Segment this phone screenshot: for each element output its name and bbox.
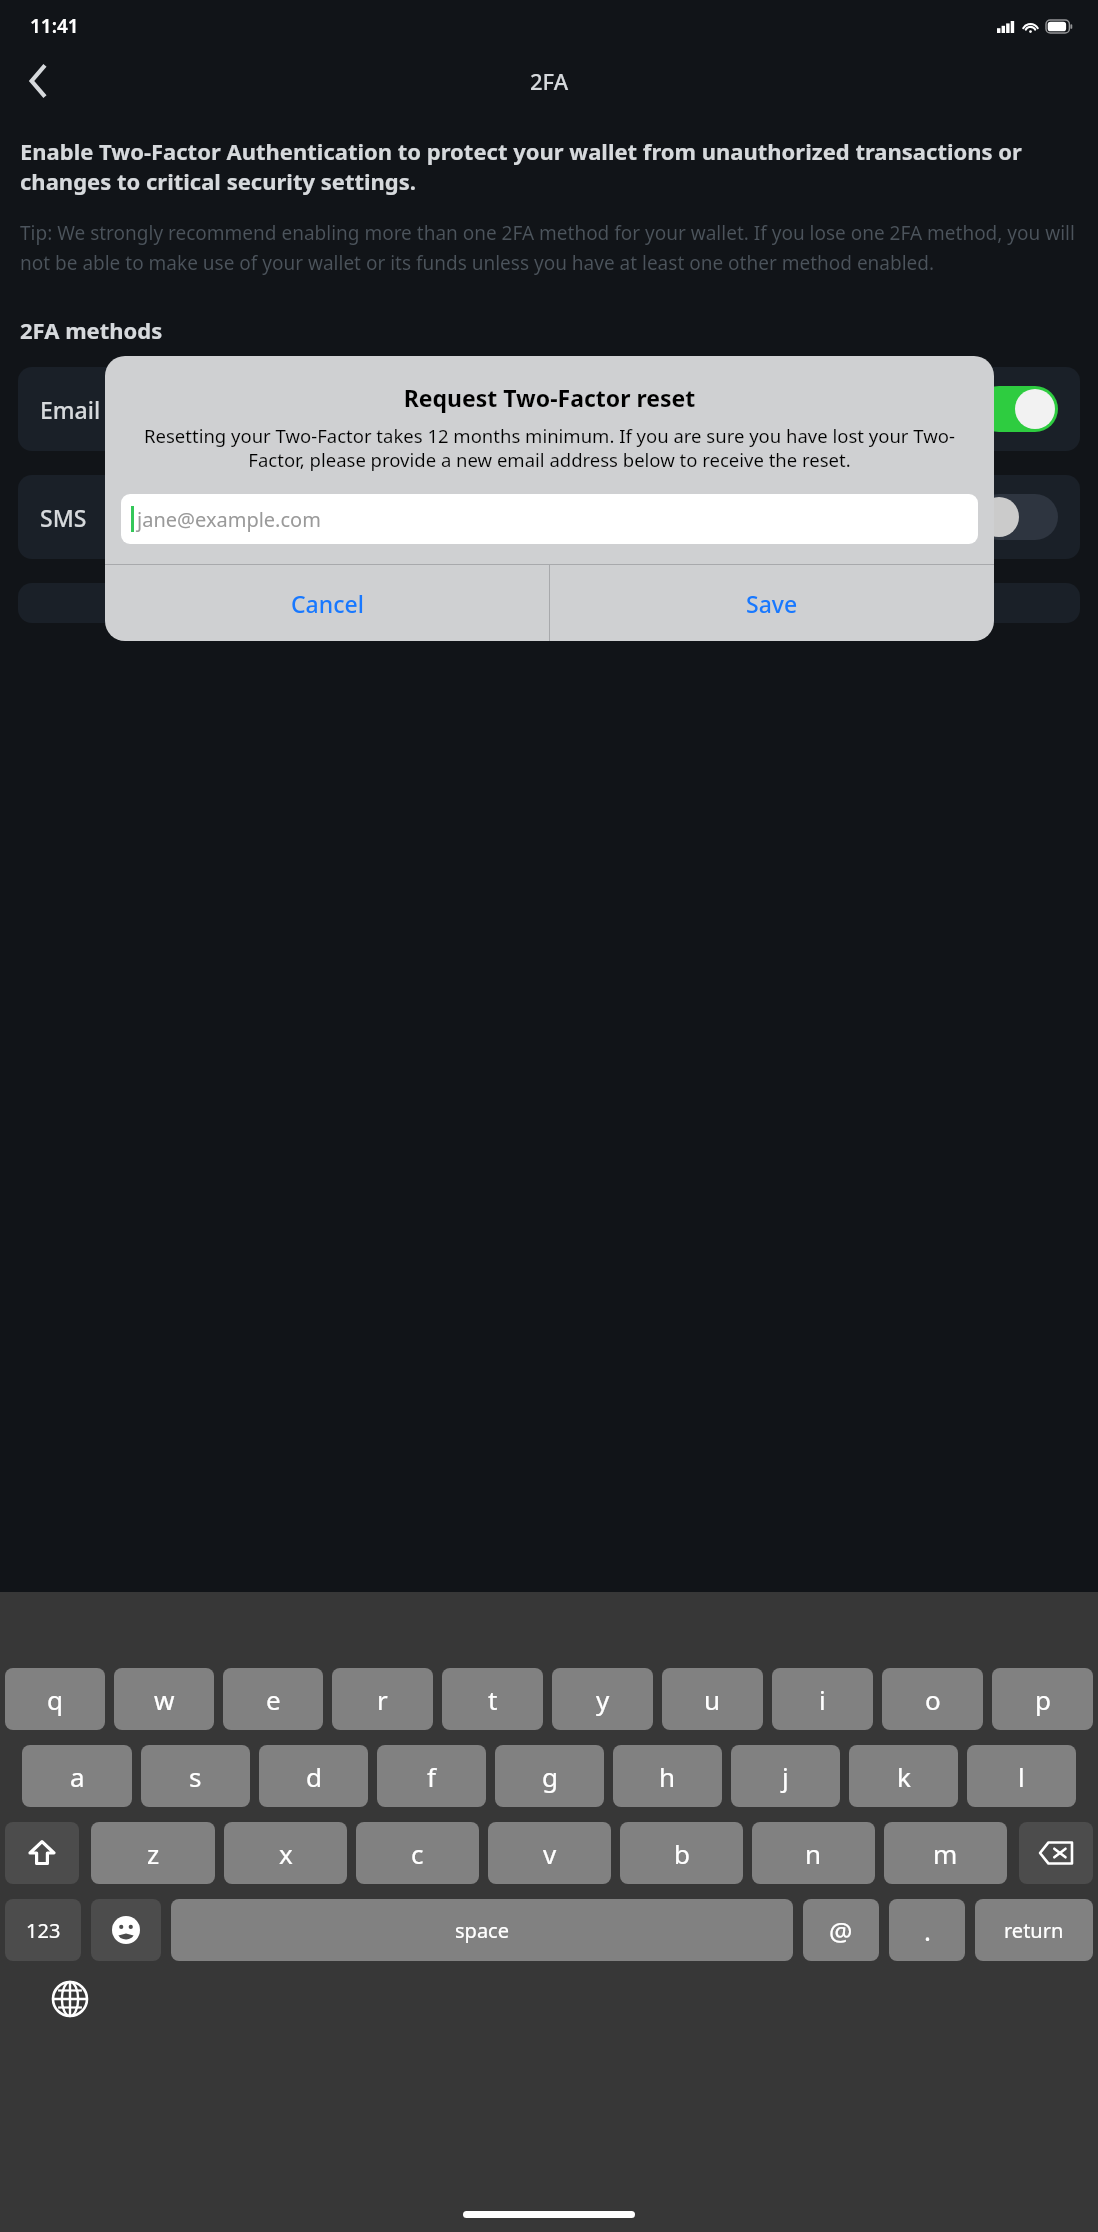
staticText: jane@example.com	[137, 506, 321, 533]
button[interactable]: c	[356, 1822, 479, 1884]
button[interactable]: t	[442, 1668, 543, 1730]
button[interactable]: h	[613, 1745, 722, 1807]
staticText: o	[925, 1682, 941, 1717]
button[interactable]: y	[552, 1668, 653, 1730]
button[interactable]: jane@example.com	[121, 494, 978, 544]
staticText: f	[427, 1759, 436, 1794]
staticText: w	[154, 1682, 175, 1717]
button[interactable]: Save	[550, 565, 994, 641]
button[interactable]: z	[91, 1822, 215, 1884]
staticText: a	[70, 1759, 85, 1794]
staticText: j	[782, 1759, 789, 1794]
button[interactable]	[976, 386, 1058, 432]
staticText: e	[266, 1682, 281, 1717]
button[interactable]: v	[488, 1822, 611, 1884]
staticText: m	[933, 1836, 958, 1871]
button[interactable]: b	[620, 1822, 743, 1884]
staticText: SMS	[40, 502, 87, 533]
button[interactable]: SMS	[18, 475, 1080, 559]
button[interactable]: Cancel	[105, 565, 549, 641]
button[interactable]: k	[849, 1745, 958, 1807]
staticText: k	[897, 1759, 911, 1794]
button[interactable]: space	[171, 1899, 793, 1961]
staticText: n	[805, 1836, 822, 1871]
staticText: 123	[26, 1917, 61, 1944]
staticText: @	[829, 1913, 853, 1948]
staticText: Resetting your Two-Factor takes 12 month…	[119, 423, 980, 472]
button[interactable]	[976, 494, 1058, 540]
staticText: t	[488, 1682, 498, 1717]
staticText: z	[147, 1836, 160, 1871]
button[interactable]: p	[992, 1668, 1093, 1730]
staticText: Enable Two-Factor Authentication to prot…	[20, 136, 1078, 196]
staticText: Request Two-Factor reset	[105, 382, 994, 413]
staticText: Email	[40, 394, 101, 425]
button[interactable]: e	[223, 1668, 323, 1730]
staticText: s	[189, 1759, 202, 1794]
button[interactable]: Back	[14, 57, 62, 105]
button[interactable]: s	[141, 1745, 250, 1807]
button[interactable]: Email	[18, 367, 1080, 451]
staticText: b	[674, 1836, 690, 1871]
button[interactable]: f	[377, 1745, 486, 1807]
staticText: c	[411, 1836, 424, 1871]
staticText: Save	[746, 588, 798, 619]
button[interactable]: Change keyboard	[48, 1977, 92, 2021]
staticText: 2FA methods	[20, 315, 163, 345]
staticText: Cancel	[291, 588, 364, 619]
staticText: d	[306, 1759, 322, 1794]
button[interactable]: u	[662, 1668, 763, 1730]
button[interactable]: o	[882, 1668, 983, 1730]
button[interactable]: x	[224, 1822, 347, 1884]
button[interactable]: 123	[5, 1899, 81, 1961]
staticText: 2FA	[530, 66, 569, 96]
button[interactable]: i	[772, 1668, 873, 1730]
button[interactable]: q	[5, 1668, 105, 1730]
staticText: l	[1018, 1759, 1025, 1794]
staticText: g	[542, 1759, 558, 1794]
button[interactable]: a	[22, 1745, 132, 1807]
button[interactable]: j	[731, 1745, 840, 1807]
button[interactable]: return	[975, 1899, 1093, 1961]
staticText: q	[47, 1682, 63, 1717]
staticText: .	[924, 1913, 931, 1948]
staticText: y	[596, 1682, 610, 1717]
staticText: Tip: We strongly recommend enabling more…	[20, 220, 1078, 275]
button[interactable]: Shift	[5, 1822, 79, 1884]
button[interactable]: .	[889, 1899, 965, 1961]
staticText: i	[819, 1682, 826, 1717]
button[interactable]: r	[332, 1668, 433, 1730]
staticText: return	[1004, 1917, 1064, 1944]
button[interactable]: n	[752, 1822, 875, 1884]
button[interactable]: w	[114, 1668, 214, 1730]
button[interactable]: @	[803, 1899, 879, 1961]
button[interactable]: m	[884, 1822, 1007, 1884]
staticText: 11:41	[30, 13, 79, 39]
staticText: v	[543, 1836, 557, 1871]
button[interactable]: g	[495, 1745, 604, 1807]
button[interactable]: d	[259, 1745, 368, 1807]
staticText: x	[279, 1836, 293, 1871]
button[interactable]: Emoji	[91, 1899, 161, 1961]
staticText: h	[659, 1759, 676, 1794]
button[interactable]: l	[967, 1745, 1076, 1807]
staticText: p	[1035, 1682, 1051, 1717]
staticText: r	[377, 1682, 388, 1717]
staticText: u	[704, 1682, 721, 1717]
staticText: space	[455, 1917, 509, 1944]
button[interactable]: Backspace	[1019, 1822, 1093, 1884]
